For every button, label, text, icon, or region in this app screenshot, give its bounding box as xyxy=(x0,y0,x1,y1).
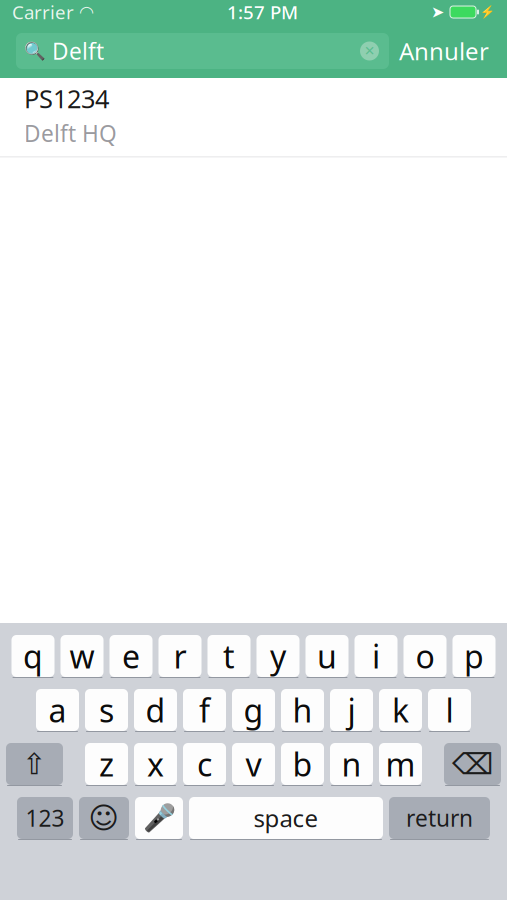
button[interactable]: b xyxy=(281,743,324,786)
button[interactable]: Space xyxy=(189,797,383,840)
staticText: u xyxy=(317,635,337,677)
staticText: i xyxy=(372,635,380,677)
staticText: z xyxy=(99,743,114,785)
button[interactable]: u xyxy=(305,635,348,678)
button[interactable]: s xyxy=(85,689,128,732)
staticText: j xyxy=(347,689,355,731)
staticText: g xyxy=(243,689,263,731)
button[interactable]: g xyxy=(232,689,275,732)
staticText: ⇧ xyxy=(22,747,47,781)
staticText: b xyxy=(292,743,312,785)
button[interactable]: e xyxy=(109,635,152,678)
button[interactable]: a xyxy=(36,689,79,732)
button[interactable]: PS1234 xyxy=(0,78,507,148)
button[interactable]: t xyxy=(207,635,250,678)
staticText: q xyxy=(23,635,43,677)
button[interactable]: m xyxy=(379,743,422,786)
button[interactable]: v xyxy=(232,743,275,786)
button[interactable]: Return xyxy=(389,797,490,840)
staticText: 123 xyxy=(25,803,64,833)
button[interactable]: d xyxy=(134,689,177,732)
staticText: h xyxy=(292,689,312,731)
button[interactable]: y xyxy=(256,635,299,678)
button[interactable]: p xyxy=(452,635,495,678)
button[interactable]: f xyxy=(183,689,226,732)
button[interactable]: o xyxy=(403,635,446,678)
staticText: ☺ xyxy=(88,801,119,835)
staticText: s xyxy=(99,689,114,731)
staticText: t xyxy=(223,635,235,677)
staticText: ✕ xyxy=(364,43,375,58)
button[interactable]: Emoji xyxy=(79,797,129,840)
staticText: r xyxy=(173,635,186,677)
staticText: Delft xyxy=(52,36,104,66)
staticText: 🔍 xyxy=(24,41,46,61)
staticText: p xyxy=(464,635,484,677)
staticText: PS1234 xyxy=(24,82,109,115)
button[interactable]: i xyxy=(354,635,397,678)
button[interactable]: Numbers xyxy=(17,797,73,840)
staticText: return xyxy=(406,803,473,833)
staticText: o xyxy=(415,635,434,677)
staticText: Carrier xyxy=(12,0,74,24)
staticText: n xyxy=(341,743,361,785)
button[interactable]: Annuler xyxy=(389,33,499,69)
button[interactable]: c xyxy=(183,743,226,786)
button[interactable]: r xyxy=(158,635,201,678)
staticText: e xyxy=(122,635,140,677)
staticText: l xyxy=(445,689,453,731)
button[interactable]: q xyxy=(11,635,54,678)
button[interactable]: Dictate xyxy=(135,797,183,840)
button[interactable]: Delete xyxy=(444,743,501,786)
staticText: ⌫ xyxy=(452,747,493,781)
button[interactable]: Shift xyxy=(6,743,63,786)
button[interactable]: k xyxy=(379,689,422,732)
button[interactable]: z xyxy=(85,743,128,786)
staticText: Delft HQ xyxy=(24,118,117,148)
staticText: a xyxy=(48,689,66,731)
staticText: ➤ xyxy=(431,3,444,21)
staticText: k xyxy=(392,689,409,731)
staticText: c xyxy=(197,743,212,785)
button[interactable]: l xyxy=(428,689,471,732)
staticText: space xyxy=(253,802,318,834)
staticText: 1:57 PM xyxy=(227,0,298,24)
staticText: v xyxy=(245,743,261,785)
staticText: d xyxy=(145,689,165,731)
staticText: w xyxy=(69,635,94,677)
staticText: y xyxy=(270,635,286,677)
button[interactable]: w xyxy=(60,635,103,678)
button[interactable]: x xyxy=(134,743,177,786)
staticText: ⚡ xyxy=(480,5,495,19)
button[interactable]: Clear text xyxy=(360,41,379,60)
staticText: Annuler xyxy=(399,35,489,67)
button[interactable]: h xyxy=(281,689,324,732)
staticText: 🎤 xyxy=(142,803,175,833)
button[interactable]: j xyxy=(330,689,373,732)
staticText: ◠ xyxy=(79,2,94,22)
staticText: m xyxy=(385,743,415,785)
staticText: f xyxy=(199,689,210,731)
staticText: x xyxy=(147,743,164,785)
button[interactable]: n xyxy=(330,743,373,786)
